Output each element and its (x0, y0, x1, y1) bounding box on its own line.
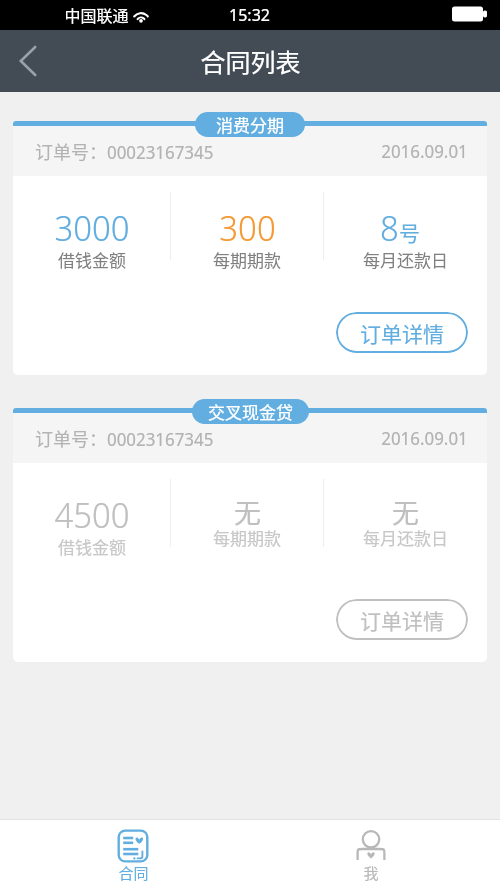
staticText: 借钱金额 (58, 534, 126, 559)
staticText: 无 (392, 492, 419, 531)
staticText: 交叉现金贷 (208, 399, 293, 424)
button[interactable]: 我 (250, 820, 500, 889)
staticText: 消费分期 (216, 112, 284, 137)
button[interactable]: 订单详情 (336, 312, 468, 353)
staticText: 3000 (54, 204, 130, 252)
staticText: 4500 (54, 491, 130, 539)
staticText: 借钱金额 (58, 247, 126, 272)
staticText: 我 (363, 862, 379, 884)
staticText: 每月还款日 (363, 525, 448, 550)
staticText: 每期期款 (213, 525, 281, 550)
staticText: 每月还款日 (363, 247, 448, 272)
staticText: 订单号：00023167345 (35, 138, 214, 164)
staticText: 合同列表 (200, 43, 301, 79)
staticText: 中国联通 (64, 3, 129, 26)
staticText: 订单号：00023167345 (35, 425, 214, 451)
staticText: 每期期款 (213, 247, 281, 272)
button[interactable]: 订单详情 (336, 599, 468, 640)
staticText: 2016.09.01 (381, 139, 468, 164)
staticText: 15:32 (229, 3, 270, 26)
staticText: 无 (234, 492, 261, 531)
staticText: 2016.09.01 (381, 426, 468, 451)
staticText: 8号 (380, 204, 420, 252)
staticText: 订单详情 (360, 318, 444, 348)
button[interactable]: Back (0, 33, 56, 89)
staticText: 订单详情 (360, 605, 444, 635)
button[interactable]: 合同 (0, 820, 250, 889)
staticText: 300 (219, 204, 276, 252)
staticText: 合同 (118, 862, 149, 884)
